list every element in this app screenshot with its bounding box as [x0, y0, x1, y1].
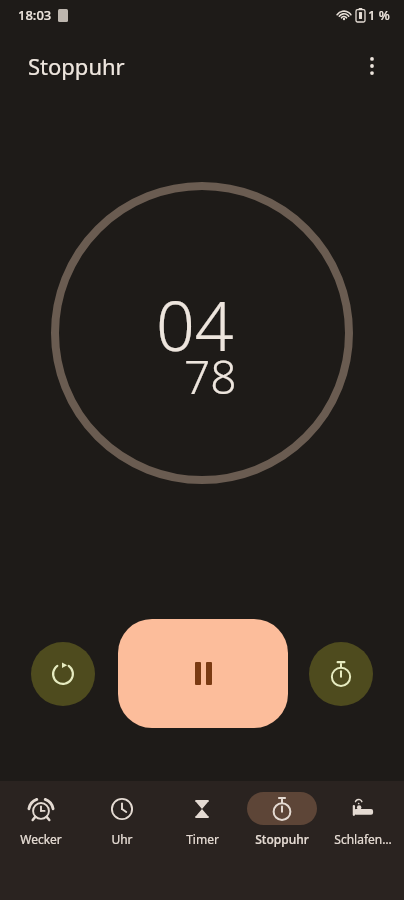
staticText: 18:03	[18, 6, 52, 24]
button[interactable]: Mehr Optionen	[348, 42, 396, 90]
button[interactable]: Timer	[163, 792, 241, 847]
staticText: Uhr	[111, 831, 133, 847]
button[interactable]: Wecker	[2, 792, 80, 847]
button[interactable]: Uhr	[83, 792, 161, 847]
staticText: Schlafen…	[334, 831, 392, 847]
button[interactable]: Runde	[309, 642, 373, 706]
button[interactable]: Stoppuhr	[243, 792, 321, 847]
staticText: Wecker	[20, 831, 62, 847]
button[interactable]: Schlafen…	[324, 792, 402, 847]
staticText: 04	[156, 278, 234, 371]
staticText: 78	[184, 345, 237, 408]
staticText: Stoppuhr	[255, 831, 309, 847]
staticText: Stoppuhr	[28, 51, 125, 81]
button[interactable]: Zurücksetzen	[31, 642, 95, 706]
staticText: 1 %	[368, 6, 390, 24]
staticText: Timer	[186, 831, 219, 847]
button[interactable]: Pause	[118, 619, 288, 728]
